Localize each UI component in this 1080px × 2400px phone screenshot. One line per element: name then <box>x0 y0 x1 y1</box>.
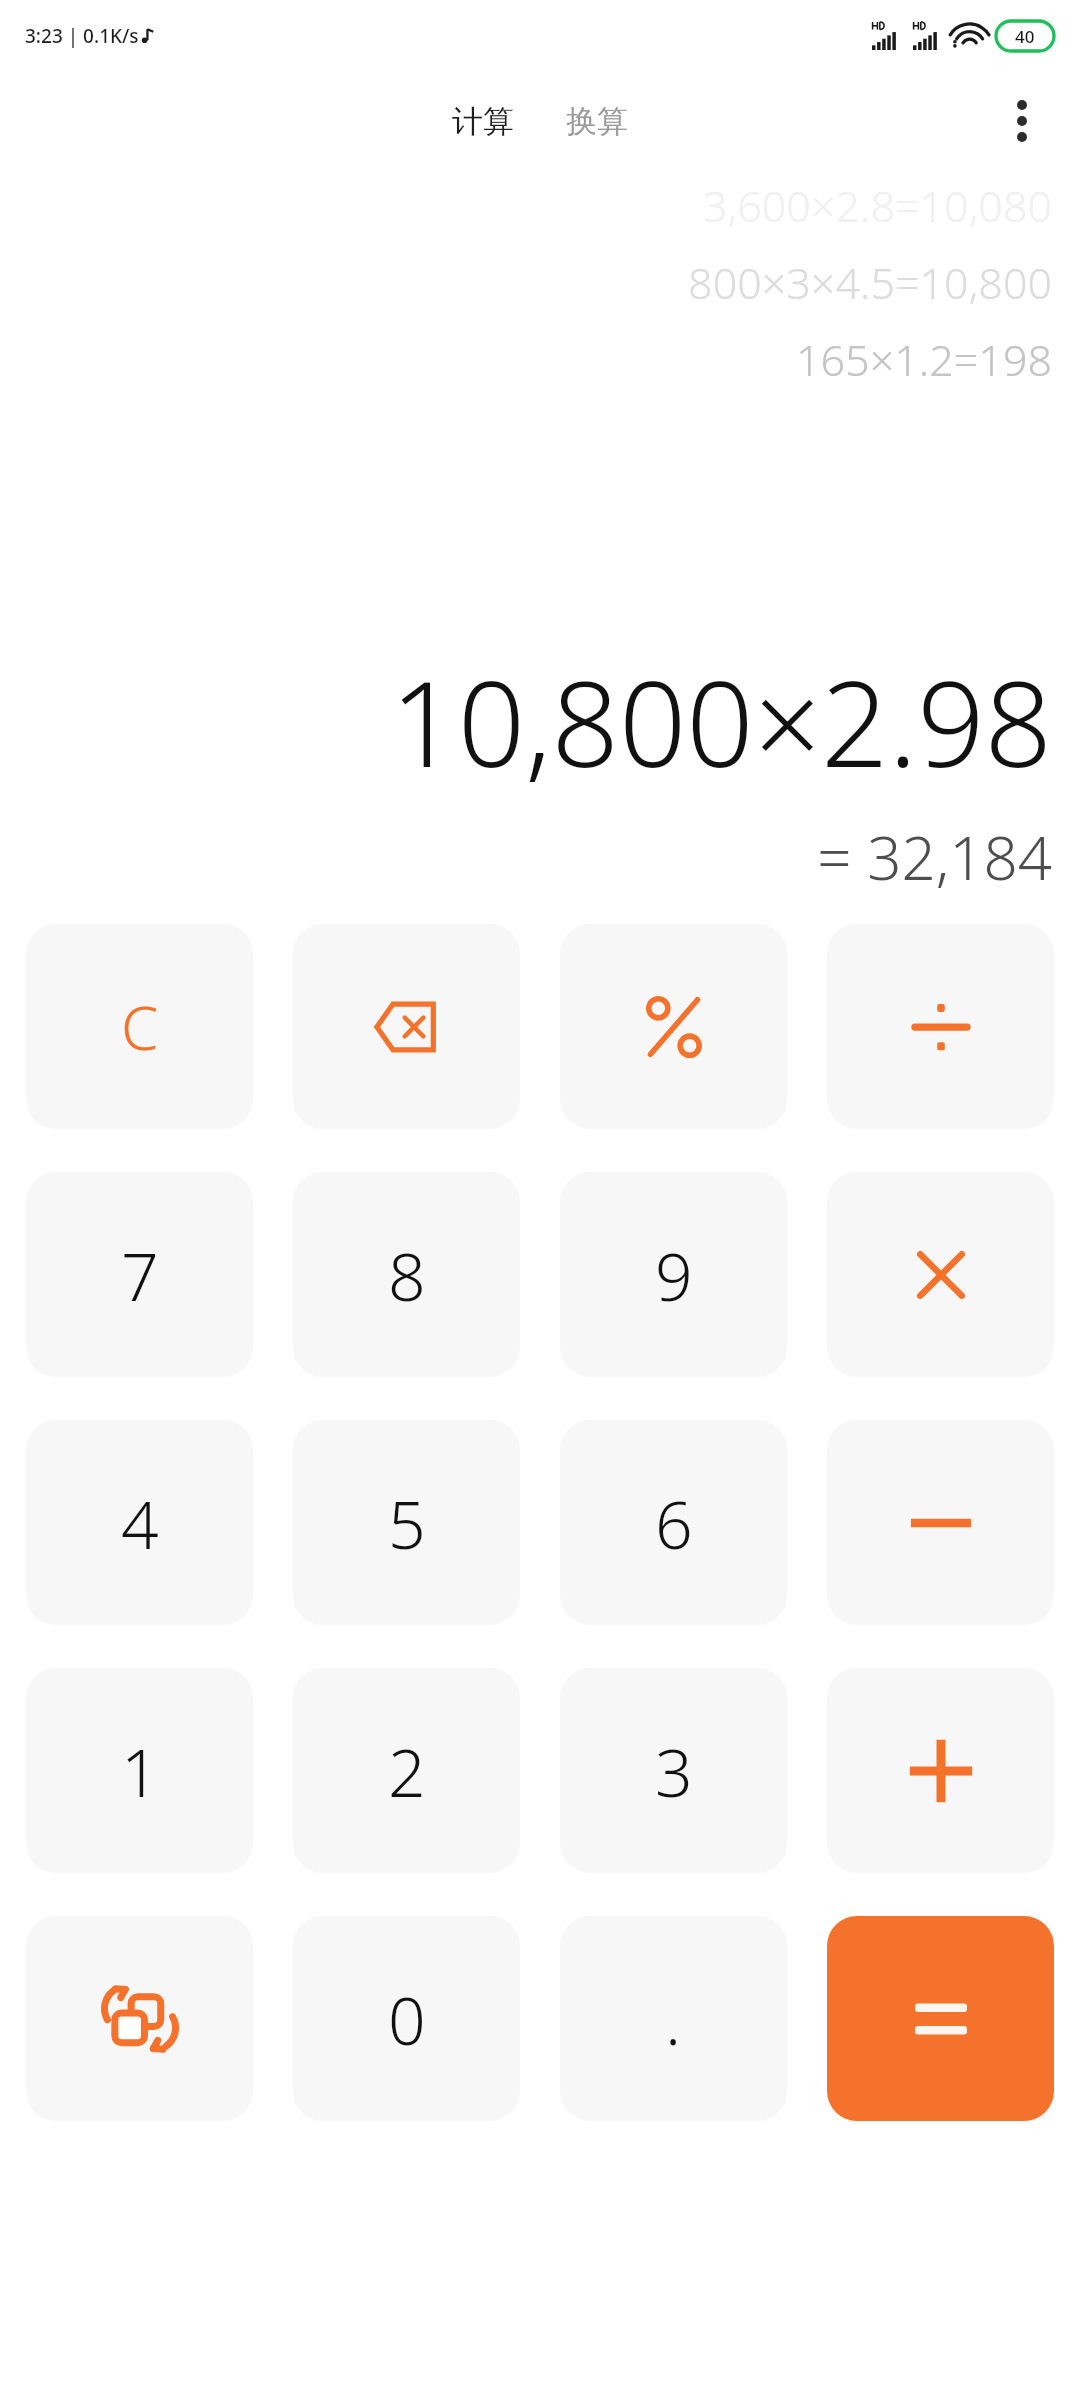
staticText: 4 <box>121 1478 159 1568</box>
staticText: 10,800×2.98 <box>390 641 1052 802</box>
staticText: 计算 <box>452 102 514 141</box>
button[interactable]: More options <box>986 85 1058 157</box>
staticText: 40 <box>1015 25 1035 48</box>
button[interactable]: 3 <box>560 1668 787 1873</box>
staticText: 9 <box>655 1230 693 1320</box>
button[interactable]: 计算 <box>444 96 522 147</box>
staticText: 5 <box>388 1478 426 1568</box>
staticText: 换算 <box>566 102 628 141</box>
button[interactable]: 165×1.2=198 <box>795 330 1052 389</box>
staticText: 800×3×4.5=10,800 <box>688 253 1052 312</box>
button[interactable]: 换算 <box>558 96 636 147</box>
button[interactable]: 3,600×2.8=10,080 <box>702 176 1052 235</box>
button[interactable]: Equals <box>827 1916 1054 2121</box>
button[interactable]: . <box>560 1916 787 2121</box>
button[interactable]: 4 <box>26 1420 253 1625</box>
staticText: C <box>121 986 159 1068</box>
button[interactable]: Convert <box>26 1916 253 2121</box>
staticText: 6 <box>655 1478 693 1568</box>
staticText: 1 <box>121 1726 159 1816</box>
button[interactable]: 9 <box>560 1172 787 1377</box>
staticText: = 32,184 <box>817 816 1052 898</box>
button[interactable]: C <box>26 924 253 1129</box>
staticText: 0 <box>388 1974 426 2064</box>
button[interactable]: 1 <box>26 1668 253 1873</box>
staticText: 2 <box>388 1726 426 1816</box>
button[interactable]: 2 <box>293 1668 520 1873</box>
button[interactable]: 800×3×4.5=10,800 <box>688 253 1052 312</box>
staticText: . <box>665 1974 682 2064</box>
button[interactable]: 5 <box>293 1420 520 1625</box>
button[interactable]: Plus <box>827 1668 1054 1873</box>
button[interactable]: Percent <box>560 924 787 1129</box>
staticText: 7 <box>121 1230 159 1320</box>
button[interactable]: Minus <box>827 1420 1054 1625</box>
button[interactable]: Divide <box>827 924 1054 1129</box>
button[interactable]: 7 <box>26 1172 253 1377</box>
button[interactable]: Backspace <box>293 924 520 1129</box>
staticText: 8 <box>388 1230 426 1320</box>
staticText: 165×1.2=198 <box>795 330 1052 389</box>
staticText: 3 <box>655 1726 693 1816</box>
staticText: 3:23 | 0.1K/s <box>25 23 139 49</box>
button[interactable]: 6 <box>560 1420 787 1625</box>
button[interactable]: Multiply <box>827 1172 1054 1377</box>
button[interactable]: 0 <box>293 1916 520 2121</box>
staticText: 3,600×2.8=10,080 <box>702 176 1052 235</box>
button[interactable]: 8 <box>293 1172 520 1377</box>
